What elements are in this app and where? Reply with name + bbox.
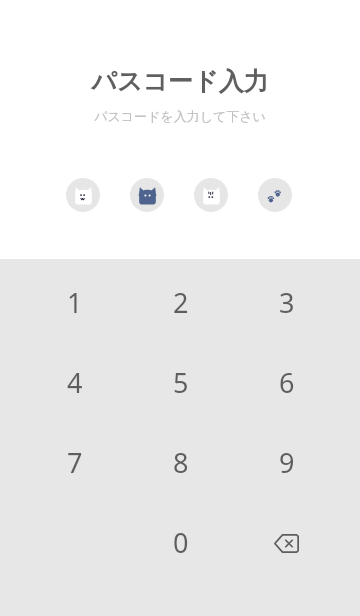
button[interactable]: 8	[127, 421, 233, 501]
button[interactable]: 0	[127, 501, 233, 581]
staticText: 7	[67, 444, 83, 481]
button[interactable]: 7	[21, 421, 127, 501]
button[interactable]: 2	[127, 261, 233, 341]
staticText: 0	[173, 524, 189, 561]
button[interactable]: 9	[233, 421, 339, 501]
button[interactable]: 5	[127, 341, 233, 421]
staticText: 2	[173, 284, 189, 321]
staticText: 4	[67, 364, 83, 401]
staticText: 1	[67, 284, 83, 321]
staticText: 8	[173, 444, 189, 481]
button[interactable]: 1	[21, 261, 127, 341]
staticText: パスコード入力	[91, 66, 269, 97]
staticText: 5	[173, 364, 189, 401]
button[interactable]: Backspace, delete last digit	[233, 501, 339, 581]
staticText: パスコードを入力して下さい	[94, 108, 266, 124]
other: Passcode progress: 1 of 4 entered	[66, 178, 292, 212]
staticText: 3	[279, 284, 295, 321]
staticText: 9	[279, 444, 295, 481]
staticText: 6	[279, 364, 295, 401]
button[interactable]: 6	[233, 341, 339, 421]
button[interactable]: 4	[21, 341, 127, 421]
button[interactable]: 3	[233, 261, 339, 341]
